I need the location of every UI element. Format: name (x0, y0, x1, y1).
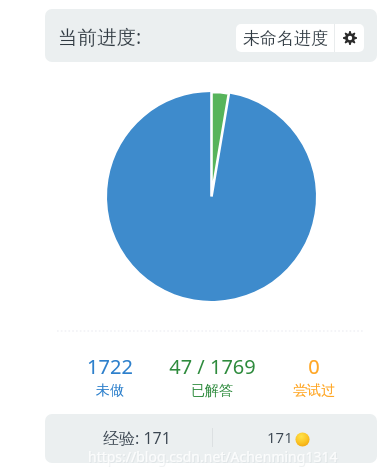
button[interactable]: 0 (263, 353, 365, 400)
staticText: 未命名进度 (243, 28, 328, 49)
button[interactable]: 1722 (59, 353, 161, 400)
staticText: 经验: 171 (103, 427, 171, 449)
staticText: 1722 (87, 353, 133, 380)
staticText: 当前进度: (58, 23, 142, 50)
staticText: 171 (267, 427, 293, 447)
button[interactable]: 经验: 171 (45, 414, 377, 463)
staticText: 未做 (96, 382, 124, 400)
staticText: 尝试过 (293, 382, 335, 400)
button[interactable]: Settings (335, 24, 364, 52)
staticText: 47 / 1769 (169, 353, 256, 380)
button[interactable]: 47 / 1769 (161, 353, 263, 400)
staticText: https://blog.csdn.net/Achenming1314 (88, 447, 338, 466)
staticText: 已解答 (191, 382, 233, 400)
staticText: 0 (308, 353, 320, 380)
staticText: https://blog.csdn.net/Achenming1314 (89, 448, 339, 467)
button[interactable]: 未命名进度 (236, 24, 334, 52)
